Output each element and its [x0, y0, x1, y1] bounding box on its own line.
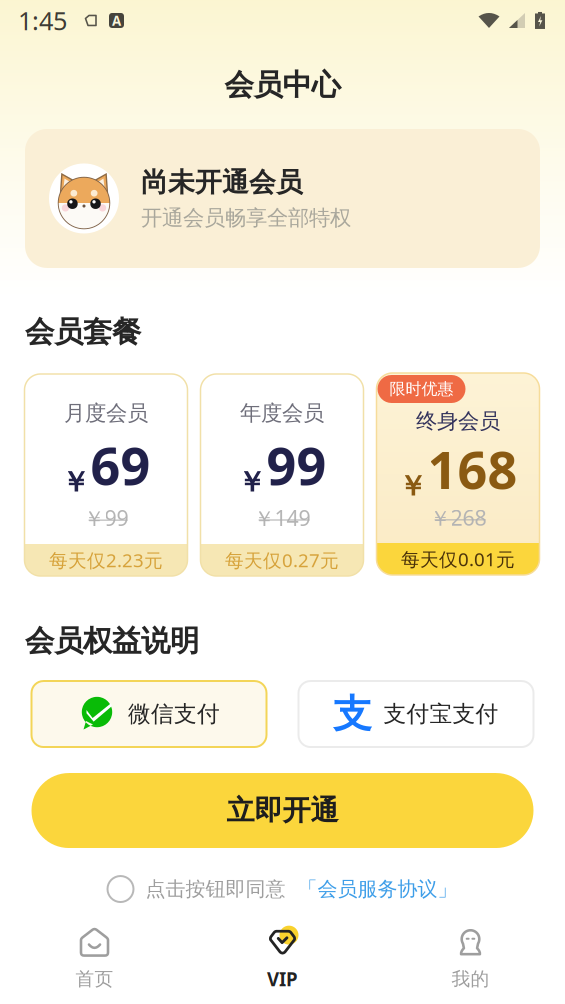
staticText: 立即开通	[226, 793, 338, 828]
button[interactable]: 点击按钮即同意	[107, 868, 457, 910]
staticText: ￥99	[83, 504, 128, 532]
staticText: 尚未开通会员	[141, 166, 303, 199]
staticText: ￥	[61, 465, 89, 499]
staticText: A	[112, 12, 121, 29]
staticText: 年度会员	[240, 400, 324, 426]
staticText: 每天仅0.27元	[225, 548, 339, 572]
button[interactable]: 首页	[0, 910, 188, 1004]
staticText: ￥268	[429, 503, 486, 532]
button[interactable]: 终身会员	[376, 373, 539, 575]
button[interactable]: 立即开通	[31, 773, 533, 848]
staticText: 支	[333, 690, 372, 738]
staticText: 99	[266, 430, 326, 499]
staticText: 月度会员	[64, 400, 148, 426]
staticText: 「会员服务协议」	[297, 877, 457, 901]
staticText: ￥	[398, 469, 426, 503]
staticText: 每天仅2.23元	[49, 548, 163, 572]
staticText: 微信支付	[128, 700, 220, 728]
button[interactable]: 支	[298, 681, 533, 747]
button[interactable]: 微信支付	[31, 681, 266, 747]
staticText: 我的	[451, 968, 489, 990]
button[interactable]: 我的	[376, 910, 564, 1004]
staticText: ￥149	[253, 504, 310, 532]
staticText: 168	[427, 434, 517, 503]
staticText: 支付宝支付	[383, 700, 498, 728]
staticText: 69	[90, 430, 150, 499]
staticText: 每天仅0.01元	[401, 547, 515, 571]
button[interactable]: 年度会员	[200, 374, 363, 576]
staticText: 限时优惠	[389, 379, 453, 399]
button[interactable]: 尚未开通会员	[25, 129, 540, 268]
staticText: ￥	[237, 465, 265, 499]
staticText: 会员权益说明	[25, 623, 199, 659]
staticText: 开通会员畅享全部特权	[141, 205, 351, 231]
staticText: 会员中心	[224, 67, 340, 103]
staticText: 点击按钮即同意	[145, 877, 285, 901]
staticText: 1:45	[18, 4, 67, 37]
button[interactable]: 月度会员	[24, 374, 187, 576]
staticText: 会员套餐	[25, 314, 141, 350]
staticText: VIP	[267, 967, 298, 991]
staticText: 终身会员	[416, 408, 500, 434]
button[interactable]: VIP	[188, 910, 376, 1004]
staticText: 首页	[75, 968, 113, 990]
